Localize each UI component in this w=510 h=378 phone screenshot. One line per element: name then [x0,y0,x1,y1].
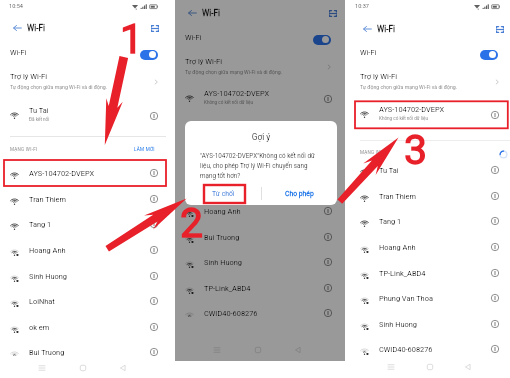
staticText: Trợ lý Wi-Fi [10,72,48,81]
button[interactable]: CWID40-608276 [346,336,510,360]
button[interactable]: AYS-104702-DVEPX [175,85,345,111]
staticText: Cho phép [285,190,314,198]
button[interactable]: Wi-Fi toggle [140,50,158,60]
staticText: Tự động chọn giữa mạng Wi-Fi và di động. [10,84,108,90]
button[interactable]: Bui Truong [0,339,175,356]
staticText: Tự động chọn giữa mạng Wi-Fi và di động. [185,69,283,75]
button[interactable]: Network details [148,110,159,121]
button[interactable]: Network details [489,215,500,226]
staticText: Sinh Huong [29,272,67,281]
button[interactable]: Trợ lý Wi-Fi [346,68,510,92]
button[interactable]: LoiNhat [0,288,175,314]
staticText: Bui Truong [204,233,240,242]
staticText: MẠNG WI-FI [10,147,38,152]
button[interactable]: Trợ lý Wi-Fi [175,53,345,77]
button[interactable]: AYS-104702-DVEPX [346,101,510,127]
button[interactable]: CWID40-608276 [175,300,345,317]
staticText: Tu Tai [29,106,49,115]
button[interactable]: Tran Thiem [346,183,510,209]
button[interactable]: Tran Thiem [175,148,345,174]
button[interactable]: Network details [148,167,159,178]
button[interactable]: Network details [489,241,500,252]
button[interactable]: Sinh Huong [346,311,510,337]
button[interactable]: Wi-Fi toggle [480,50,498,60]
button[interactable]: LÀM MỚI [130,146,166,156]
staticText: TP-Link_ABD4 [379,269,426,278]
staticText: Sinh Huong [204,258,242,267]
button[interactable]: Back [360,22,374,36]
button[interactable]: Network details [148,321,159,332]
button[interactable]: Tang 1 [346,208,510,234]
button[interactable]: Back [294,346,302,354]
button[interactable]: Trợ lý Wi-Fi [0,68,175,92]
button[interactable]: Network details [148,295,159,306]
button[interactable]: Network details [148,270,159,281]
button[interactable]: Scan QR code [149,22,161,34]
button[interactable]: Tu Tai [346,157,510,183]
button[interactable]: Hoang Anh [346,234,510,260]
button[interactable]: Network details [489,164,500,175]
button[interactable]: Home [79,364,87,372]
button[interactable]: Network details [148,244,159,255]
button[interactable]: Network details [322,307,333,317]
button[interactable]: Tu Tai [175,122,345,148]
button[interactable]: Network details [489,267,500,278]
button[interactable]: Sinh Huong [0,263,175,289]
button[interactable]: Network details [322,282,333,293]
button[interactable]: Hoang Anh [175,198,345,224]
button[interactable]: Network details [322,231,333,242]
button[interactable]: Network details [322,205,333,216]
button[interactable]: Network details [489,292,500,303]
button[interactable]: Scan QR code [494,23,506,35]
button[interactable]: Wi-Fi [0,43,175,61]
button[interactable]: TP-Link_ABD4 [346,260,510,286]
button[interactable]: Tu Tai [0,102,175,128]
button[interactable]: Network details [322,93,333,104]
staticText: CWID40-608276 [379,345,433,354]
button[interactable]: Wi-Fi [175,28,345,46]
button[interactable]: Network details [148,346,159,356]
staticText: Wi-Fi [360,48,377,57]
button[interactable]: TP-Link_ABD4 [175,275,345,301]
button[interactable]: Wi-Fi [346,43,510,61]
button[interactable]: Network details [148,218,159,229]
button[interactable]: Network details [322,256,333,267]
button[interactable]: Wi-Fi toggle [313,35,331,45]
button[interactable]: Back [119,364,127,372]
button[interactable]: Back [185,6,199,20]
staticText: MẠNG WI-FI [360,150,388,155]
button[interactable]: Recents [213,346,221,354]
staticText: Tang 1 [29,220,52,229]
staticText: Hoang Anh [379,243,416,252]
button[interactable]: Back [10,21,24,35]
button[interactable]: Home [426,363,434,371]
button[interactable]: Tang 1 [0,211,175,237]
button[interactable]: Tang 1 [175,173,345,199]
button[interactable]: Network details [489,318,500,329]
button[interactable]: ok em [0,314,175,340]
button[interactable]: Phung Van Thoa [346,285,510,311]
button[interactable]: Hoang Anh [0,237,175,263]
button[interactable]: Cho phép [261,184,337,204]
button[interactable]: Từ chối [185,184,261,204]
button[interactable]: Network details [489,190,500,201]
button[interactable]: Network details [489,109,500,120]
button[interactable]: Scan QR code [327,7,339,19]
button[interactable]: Home [254,346,262,354]
button[interactable]: Recents [387,363,395,371]
button[interactable]: Network details [148,193,159,204]
button[interactable]: Network details [489,343,500,354]
button[interactable]: Back [464,363,472,371]
button[interactable]: Tran Thiem [0,186,175,212]
button[interactable]: Recents [38,364,46,372]
button[interactable]: Sinh Huong [175,249,345,275]
staticText: Wi-Fi [27,23,46,33]
staticText: Trợ lý Wi-Fi [360,72,398,81]
button[interactable]: Bui Truong [175,224,345,250]
staticText: 3 [404,126,428,174]
button[interactable]: AYS-104702-DVEPX [0,160,175,186]
